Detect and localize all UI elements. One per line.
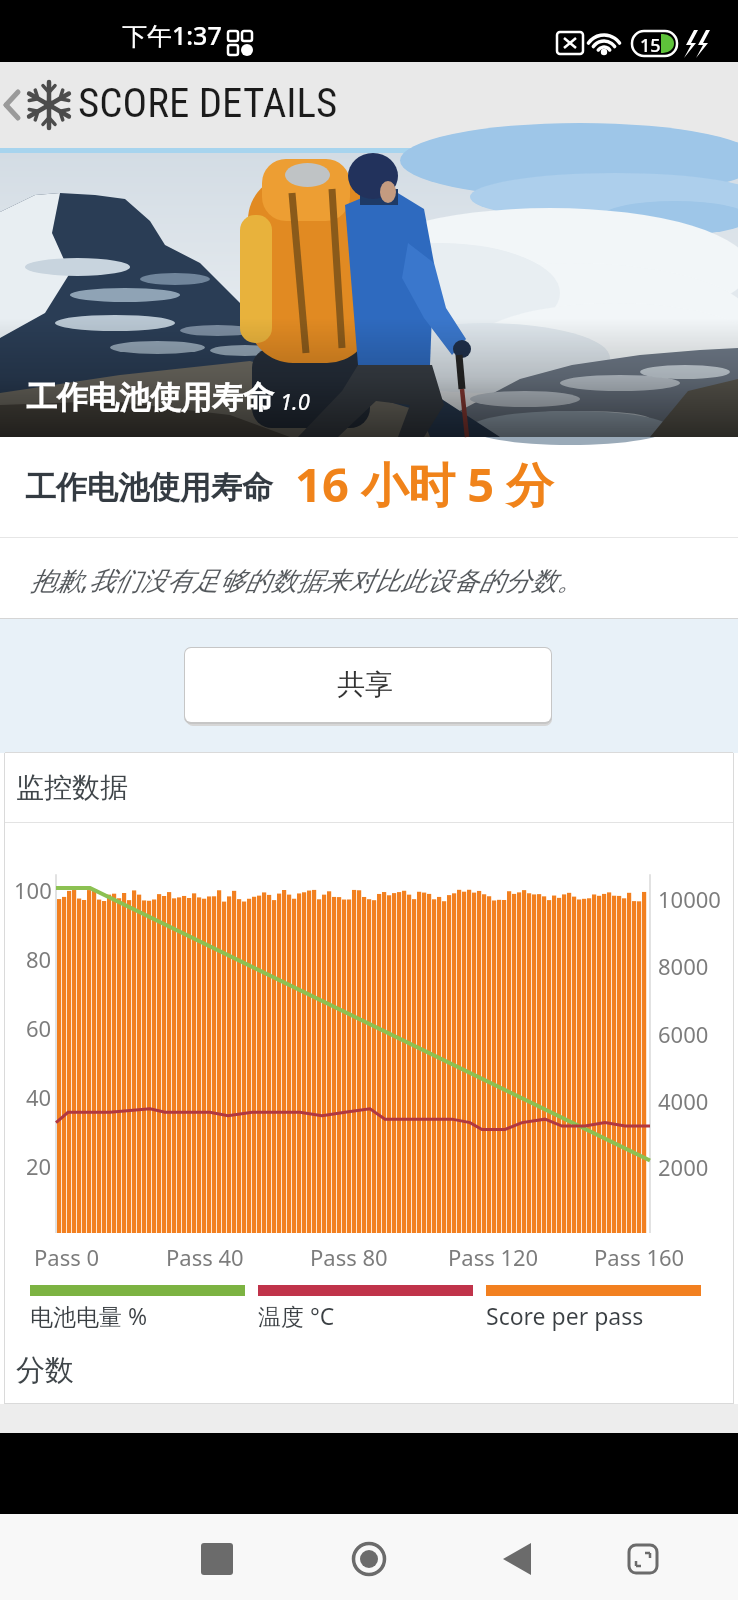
staticText: 40 (26, 1082, 52, 1112)
staticText: 下午1:37 (122, 18, 222, 52)
staticText: 80 (26, 944, 52, 974)
staticText: Pass 0 (34, 1242, 100, 1272)
staticText: Pass 160 (594, 1242, 685, 1272)
staticText: SCORE DETAILS (78, 79, 338, 127)
staticText: 共享 (337, 667, 393, 702)
staticText: 8000 (658, 951, 709, 981)
staticText: Pass 80 (310, 1242, 388, 1272)
staticText: 20 (26, 1151, 52, 1181)
staticText: 工作电池使用寿命 (25, 468, 273, 507)
button[interactable] (493, 1532, 547, 1586)
staticText: 抱歉,我们没有足够的数据来对比此设备的分数。 (30, 562, 583, 598)
staticText: 1.0 (280, 386, 310, 416)
staticText: 60 (26, 1013, 52, 1043)
staticText: 10000 (658, 884, 721, 914)
button[interactable] (0, 62, 80, 148)
staticText: 16 小时 5 分 (295, 452, 554, 516)
staticText: 100 (14, 875, 52, 905)
button[interactable]: 共享 (185, 648, 551, 722)
staticText: Pass 120 (448, 1242, 539, 1272)
button[interactable] (342, 1532, 396, 1586)
staticText: 监控数据 (16, 770, 128, 805)
staticText: Pass 40 (166, 1242, 244, 1272)
staticText: 电池电量 % (30, 1300, 148, 1331)
button[interactable] (190, 1532, 244, 1586)
staticText: 工作电池使用寿命 (26, 378, 274, 417)
staticText: Score per pass (486, 1300, 644, 1331)
staticText: 温度 °C (258, 1300, 335, 1331)
staticText: 6000 (658, 1019, 709, 1049)
staticText: 2000 (658, 1152, 709, 1182)
staticText: 15 (640, 33, 661, 58)
staticText: 分数 (16, 1352, 74, 1389)
button[interactable] (616, 1532, 670, 1586)
staticText: 4000 (658, 1086, 709, 1116)
